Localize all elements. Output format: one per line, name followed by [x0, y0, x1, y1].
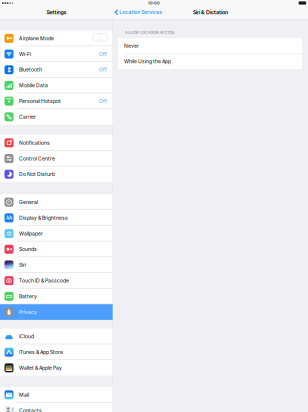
staticText: Notifications [19, 140, 50, 146]
button[interactable]: Do Not Disturb [0, 166, 113, 182]
button[interactable]: Never [124, 38, 294, 54]
button[interactable]: Bluetooth [0, 62, 113, 78]
staticText: Siri & Dictation [193, 9, 228, 15]
button[interactable]: Personal Hotspot [0, 93, 113, 109]
button[interactable]: iTunes & App Store [0, 344, 113, 360]
button[interactable]: Battery [0, 288, 113, 304]
staticText: Wallpaper [19, 230, 43, 237]
staticText: Airplane Mode [19, 35, 54, 41]
staticText: ALLOW LOCATION ACCESS [125, 30, 174, 35]
staticText: 10:00 [148, 1, 160, 5]
staticText: Mail [19, 392, 29, 398]
staticText: Siri [19, 262, 26, 268]
button[interactable]: Sounds [0, 241, 113, 257]
staticText: Personal Hotspot [19, 98, 61, 104]
button[interactable]: Siri [0, 257, 113, 273]
staticText: Do Not Disturb [19, 171, 55, 177]
staticText: Off [99, 51, 107, 57]
staticText: Never [124, 43, 139, 49]
button[interactable]: Wi-Fi [0, 46, 113, 62]
button[interactable]: Location Services [115, 8, 175, 16]
staticText: Off [99, 67, 107, 73]
button[interactable]: Notifications [0, 135, 113, 151]
staticText: Contacts [19, 407, 42, 412]
button[interactable]: Carrier [0, 109, 113, 125]
button[interactable]: AA [0, 210, 113, 226]
staticText: Wallet & Apple Pay [19, 365, 62, 371]
button[interactable]: Wallpaper [0, 226, 113, 241]
staticText: Sounds [19, 246, 37, 252]
button[interactable]: General [0, 194, 113, 210]
button[interactable]: Control Centre [0, 151, 113, 166]
staticText: Display & Brightness [19, 215, 68, 221]
button[interactable]: Contacts [0, 403, 113, 412]
button[interactable]: Airplane Mode [93, 33, 108, 41]
staticText: AA [6, 215, 12, 220]
staticText: Control Centre [19, 155, 55, 162]
button[interactable]: Privacy [0, 304, 113, 320]
staticText: General [19, 199, 38, 205]
staticText: Battery [19, 293, 37, 299]
staticText: iTunes & App Store [19, 349, 63, 355]
staticText: Off [99, 98, 107, 104]
staticText: Touch ID & Passcode [19, 278, 69, 284]
staticText: While Using the App [124, 58, 171, 64]
button[interactable]: Mail [0, 387, 113, 403]
staticText: Settings [46, 9, 66, 15]
staticText: Location Services [119, 9, 162, 15]
button[interactable]: Touch ID & Passcode [0, 273, 113, 288]
button[interactable]: Wallet & Apple Pay [0, 360, 113, 376]
button[interactable]: iCloud [0, 329, 113, 344]
staticText: Mobile Data [19, 82, 48, 88]
staticText: Wi-Fi [19, 51, 31, 57]
button[interactable]: Airplane Mode [0, 30, 113, 46]
button[interactable]: Mobile Data [0, 78, 113, 93]
staticText: Carrier [19, 114, 36, 120]
staticText: Privacy [19, 309, 37, 315]
button[interactable]: While Using the App [124, 54, 294, 69]
staticText: Bluetooth [19, 67, 42, 73]
staticText: iCloud [19, 333, 34, 339]
